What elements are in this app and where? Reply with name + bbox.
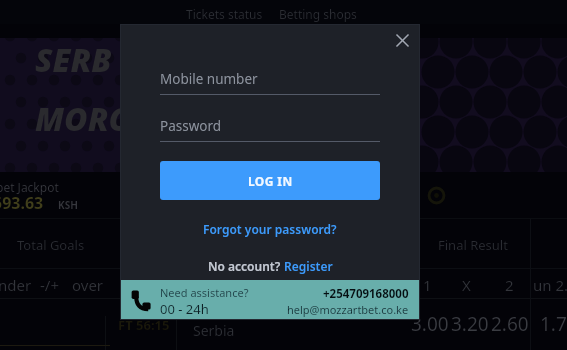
staticText: nder xyxy=(0,275,32,295)
staticText: SERB xyxy=(35,38,112,82)
staticText: 2.60 xyxy=(491,311,529,337)
staticText: over xyxy=(72,275,104,295)
staticText: MORO xyxy=(35,97,133,141)
staticText: KSH xyxy=(58,198,78,212)
staticText: Mobile number xyxy=(160,70,258,88)
staticText: 593.63 xyxy=(0,192,44,214)
staticText: un 2. xyxy=(533,275,567,295)
staticText: LOG IN xyxy=(248,173,293,189)
staticText: +254709168000 xyxy=(323,286,409,302)
staticText: Tickets status xyxy=(186,6,263,22)
button[interactable]: Need assistance? xyxy=(120,280,420,320)
button[interactable]: Register xyxy=(284,258,333,274)
staticText: 2 xyxy=(505,275,514,295)
staticText: Forgot your password? xyxy=(203,221,337,237)
staticText: Total Goals xyxy=(17,236,85,254)
staticText: 1 xyxy=(423,275,432,295)
staticText: X xyxy=(462,275,471,295)
button[interactable]: Forgot your password? xyxy=(120,219,420,239)
staticText: Betting shops xyxy=(279,6,357,22)
staticText: help@mozzartbet.co.ke xyxy=(287,302,409,317)
staticText: 3.20 xyxy=(451,311,489,337)
staticText: Need assistance? xyxy=(160,285,249,300)
staticText: 1.77 xyxy=(540,311,567,337)
staticText: 3.00 xyxy=(411,311,449,337)
staticText: Final Result xyxy=(438,236,508,254)
button[interactable]: Close xyxy=(386,24,418,56)
staticText: 00 - 24h xyxy=(160,300,209,318)
staticText: -/+ xyxy=(40,275,59,295)
staticText: FT 56:15 xyxy=(118,316,170,334)
button[interactable]: LOG IN xyxy=(160,161,380,200)
staticText: Register xyxy=(284,258,333,274)
staticText: Serbia xyxy=(193,321,235,340)
staticText: No account? xyxy=(208,258,284,274)
staticText: bet Jackpot xyxy=(0,179,59,195)
staticText: Password xyxy=(160,117,222,135)
